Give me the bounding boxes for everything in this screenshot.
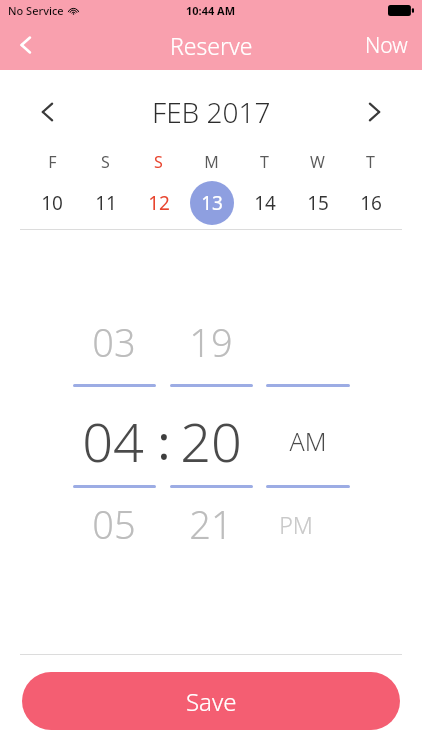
button[interactable]: 21	[175, 498, 247, 550]
button[interactable]: Next month	[352, 90, 396, 134]
staticText: 13	[201, 190, 223, 216]
staticText: No Service	[8, 3, 64, 18]
button[interactable]: S	[132, 151, 185, 225]
button[interactable]: 04	[70, 404, 156, 478]
button[interactable]: Previous month	[26, 90, 70, 134]
button[interactable]: Save	[22, 672, 400, 730]
staticText: FEB 2017	[152, 93, 271, 131]
button[interactable]: 03	[78, 316, 150, 368]
staticText: S	[101, 151, 110, 173]
staticText: 16	[360, 190, 382, 216]
staticText: Now	[365, 31, 408, 60]
button[interactable]: 05	[78, 498, 150, 550]
staticText: F	[48, 151, 57, 173]
staticText: :	[156, 409, 172, 474]
button[interactable]: 19	[175, 316, 247, 368]
staticText: 10	[41, 190, 63, 216]
button[interactable]: S	[79, 151, 132, 225]
button[interactable]: W	[291, 151, 344, 225]
button[interactable]: M	[185, 151, 238, 225]
button[interactable]: PM	[262, 509, 330, 540]
staticText: 12	[148, 190, 170, 216]
staticText: T	[366, 151, 375, 173]
staticText: M	[204, 151, 219, 173]
button[interactable]: F	[25, 151, 79, 225]
button[interactable]: T	[344, 151, 397, 225]
staticText: W	[310, 151, 325, 173]
staticText: Reserve	[170, 30, 253, 61]
staticText: Save	[186, 685, 237, 718]
staticText: T	[260, 151, 269, 173]
button[interactable]: 20	[168, 404, 254, 478]
staticText: 14	[254, 190, 276, 216]
staticText: S	[154, 151, 163, 173]
staticText: 15	[307, 190, 329, 216]
button[interactable]: Now	[365, 31, 408, 60]
staticText: 10:44 AM	[186, 3, 236, 18]
button[interactable]: AM	[272, 424, 344, 458]
button[interactable]: Back	[0, 20, 52, 70]
staticText: 11	[95, 190, 117, 216]
button[interactable]: T	[238, 151, 291, 225]
